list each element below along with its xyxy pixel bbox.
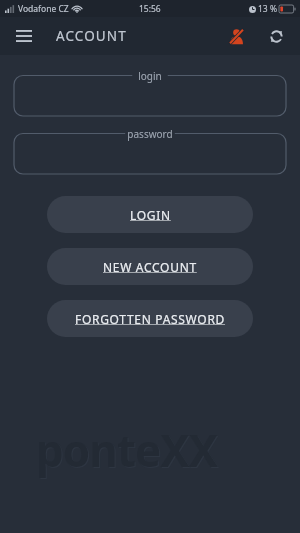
staticText: login — [138, 69, 162, 83]
button[interactable]: password — [14, 127, 286, 174]
button[interactable]: LOGIN — [47, 196, 253, 233]
button[interactable]: FORGOTTEN PASSWORD — [47, 300, 253, 337]
staticText: 15:56 — [139, 3, 161, 15]
staticText: password — [127, 127, 173, 141]
button[interactable]: login — [14, 69, 286, 116]
staticText: ACCOUNT — [56, 27, 127, 45]
button[interactable]: Account logged out — [220, 20, 252, 52]
button[interactable]: Refresh — [260, 20, 292, 52]
button[interactable]: NEW ACCOUNT — [47, 248, 253, 285]
staticText: NEW ACCOUNT — [103, 259, 197, 275]
staticText: 13 % — [258, 3, 277, 15]
staticText: FORGOTTEN PASSWORD — [75, 311, 226, 327]
staticText: LOGIN — [130, 207, 171, 223]
staticText: Vodafone CZ — [18, 3, 69, 15]
button[interactable]: Open navigation menu — [10, 22, 38, 50]
